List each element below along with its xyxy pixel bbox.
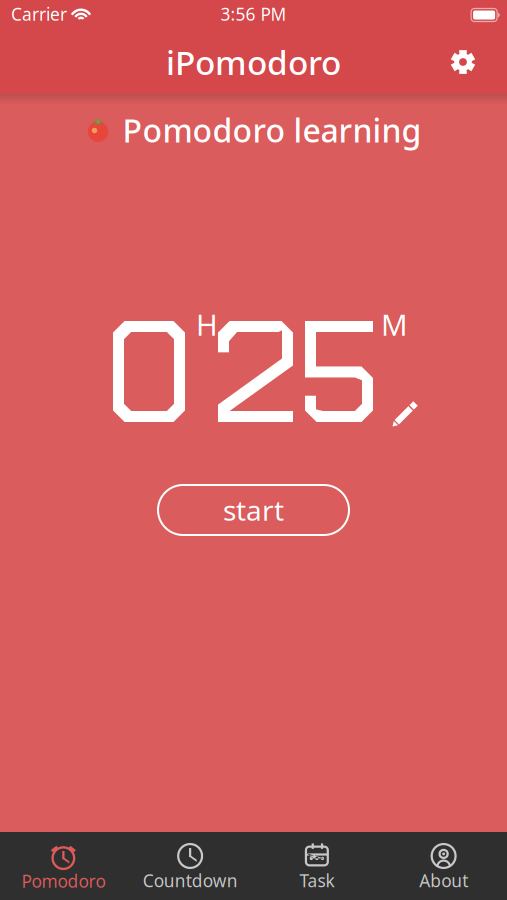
staticText: Task [299, 869, 334, 892]
button[interactable]: Pomodoro [0, 832, 127, 900]
staticText: About [419, 869, 468, 892]
button[interactable]: Settings [440, 39, 486, 85]
button[interactable]: Task [253, 832, 380, 900]
staticText: H [196, 305, 218, 344]
staticText: Carrier [11, 2, 67, 25]
button[interactable]: start [158, 485, 349, 535]
staticText: start [223, 491, 284, 529]
staticText: Countdown [143, 869, 238, 892]
staticText: iPomodoro [166, 40, 341, 84]
staticText: Pomodoro [21, 869, 105, 892]
staticText: Pomodoro learning [122, 109, 421, 151]
button[interactable]: About [380, 832, 507, 900]
staticText: 3:56 PM [220, 2, 286, 25]
button[interactable]: Countdown [127, 832, 254, 900]
staticText: M [381, 305, 408, 344]
